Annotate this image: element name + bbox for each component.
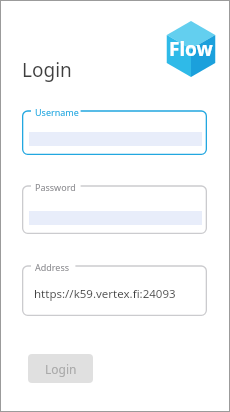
staticText: Login [45,361,77,377]
other: Flow logo [163,21,219,77]
button[interactable]: Username [22,104,207,155]
staticText: Login [22,57,72,83]
button[interactable]: Login [28,354,93,383]
button[interactable]: Address [22,259,207,316]
staticText: Username [35,106,79,118]
staticText: Address [35,261,70,273]
staticText: https://k59.vertex.fi:24093 [34,286,176,302]
staticText: Password [35,181,76,193]
staticText: Flow [169,36,213,62]
button[interactable]: Password [22,179,207,234]
